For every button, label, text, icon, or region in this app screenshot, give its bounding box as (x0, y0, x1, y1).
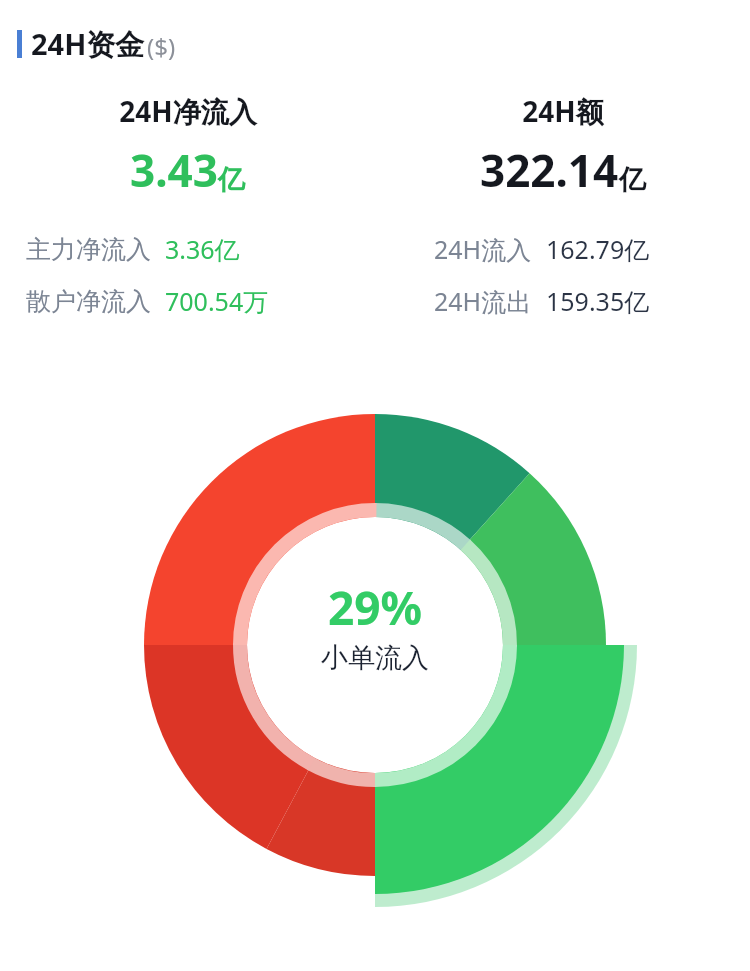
button[interactable]: 资金流向分布圆环图 (0, 390, 750, 890)
staticText: 24H净流入 (119, 92, 257, 130)
button[interactable]: 散户净流入 (0, 284, 375, 318)
staticText: 主力净流入 (26, 234, 151, 265)
staticText: ($) (147, 30, 176, 63)
staticText: 322.14 (480, 140, 619, 200)
staticText: 24H流出 (434, 284, 532, 318)
staticText: 159.35亿 (546, 284, 650, 318)
staticText: 散户净流入 (26, 286, 151, 317)
staticText: 3.43 (130, 140, 218, 200)
staticText: 亿 (218, 163, 245, 197)
staticText: 24H额 (522, 92, 604, 130)
staticText: 700.54万 (165, 284, 269, 318)
staticText: 24H流入 (434, 232, 532, 266)
staticText: 29% (328, 576, 423, 639)
button[interactable]: 24H流入 (375, 232, 750, 266)
button[interactable]: 主力净流入 (0, 232, 375, 266)
staticText: 小单流入 (321, 641, 429, 675)
staticText: 3.36亿 (165, 232, 240, 266)
button[interactable]: 24H资金 (17, 24, 750, 64)
staticText: 24H资金 (31, 24, 145, 64)
button[interactable]: 24H流出 (375, 284, 750, 318)
staticText: 亿 (619, 163, 646, 197)
staticText: 162.79亿 (546, 232, 650, 266)
